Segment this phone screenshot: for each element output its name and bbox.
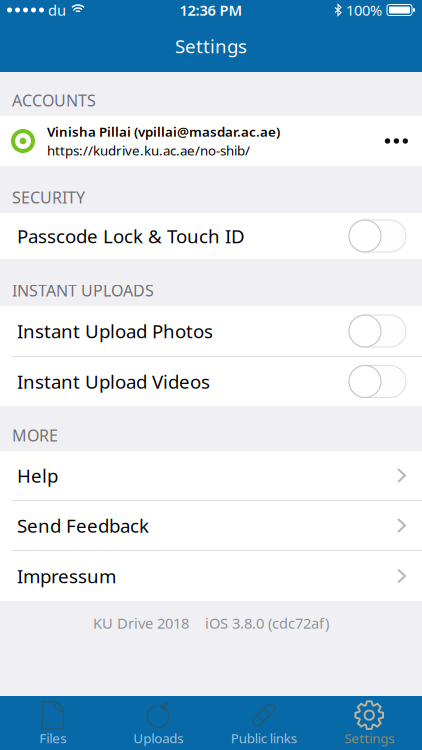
staticText: Instant Upload Videos (17, 369, 210, 394)
button[interactable]: Public links (211, 696, 316, 750)
staticText: Impressum (17, 564, 116, 588)
button[interactable]: Instant Upload Videos (0, 357, 422, 406)
button[interactable]: Send Feedback (0, 501, 422, 550)
staticText: Files (39, 729, 66, 747)
button[interactable]: Settings (316, 696, 422, 750)
staticText: INSTANT UPLOADS (12, 280, 154, 301)
staticText: Settings (175, 34, 247, 58)
staticText: ACCOUNTS (12, 90, 96, 111)
staticText: Settings (344, 729, 394, 747)
staticText: Uploads (133, 729, 183, 747)
staticText: SECURITY (12, 187, 85, 208)
button[interactable]: Passcode Lock & Touch ID (0, 213, 422, 259)
button[interactable]: Files (0, 696, 105, 750)
staticText: Passcode Lock & Touch ID (17, 224, 245, 248)
staticText: du (48, 0, 66, 20)
staticText: Send Feedback (17, 513, 149, 538)
staticText: Instant Upload Photos (17, 319, 213, 343)
button[interactable]: Help (0, 451, 422, 500)
button[interactable]: Vinisha Pillai (vpillai@masdar.ac.ae) (0, 116, 422, 166)
button[interactable]: Instant Upload Photos (0, 306, 422, 356)
staticText: 12:36 PM (179, 0, 242, 20)
button[interactable]: Uploads (105, 696, 211, 750)
staticText: Help (17, 463, 58, 488)
staticText: KU Drive 2018 iOS 3.8.0 (cdc72af) (93, 613, 329, 633)
staticText: Public links (231, 729, 297, 747)
button[interactable]: Impressum (0, 551, 422, 601)
staticText: Vinisha Pillai (vpillai@masdar.ac.ae) (47, 123, 280, 140)
staticText: https://kudrive.ku.ac.ae/no-shib/ (47, 141, 250, 159)
staticText: 100% (346, 0, 382, 20)
staticText: MORE (12, 425, 58, 446)
